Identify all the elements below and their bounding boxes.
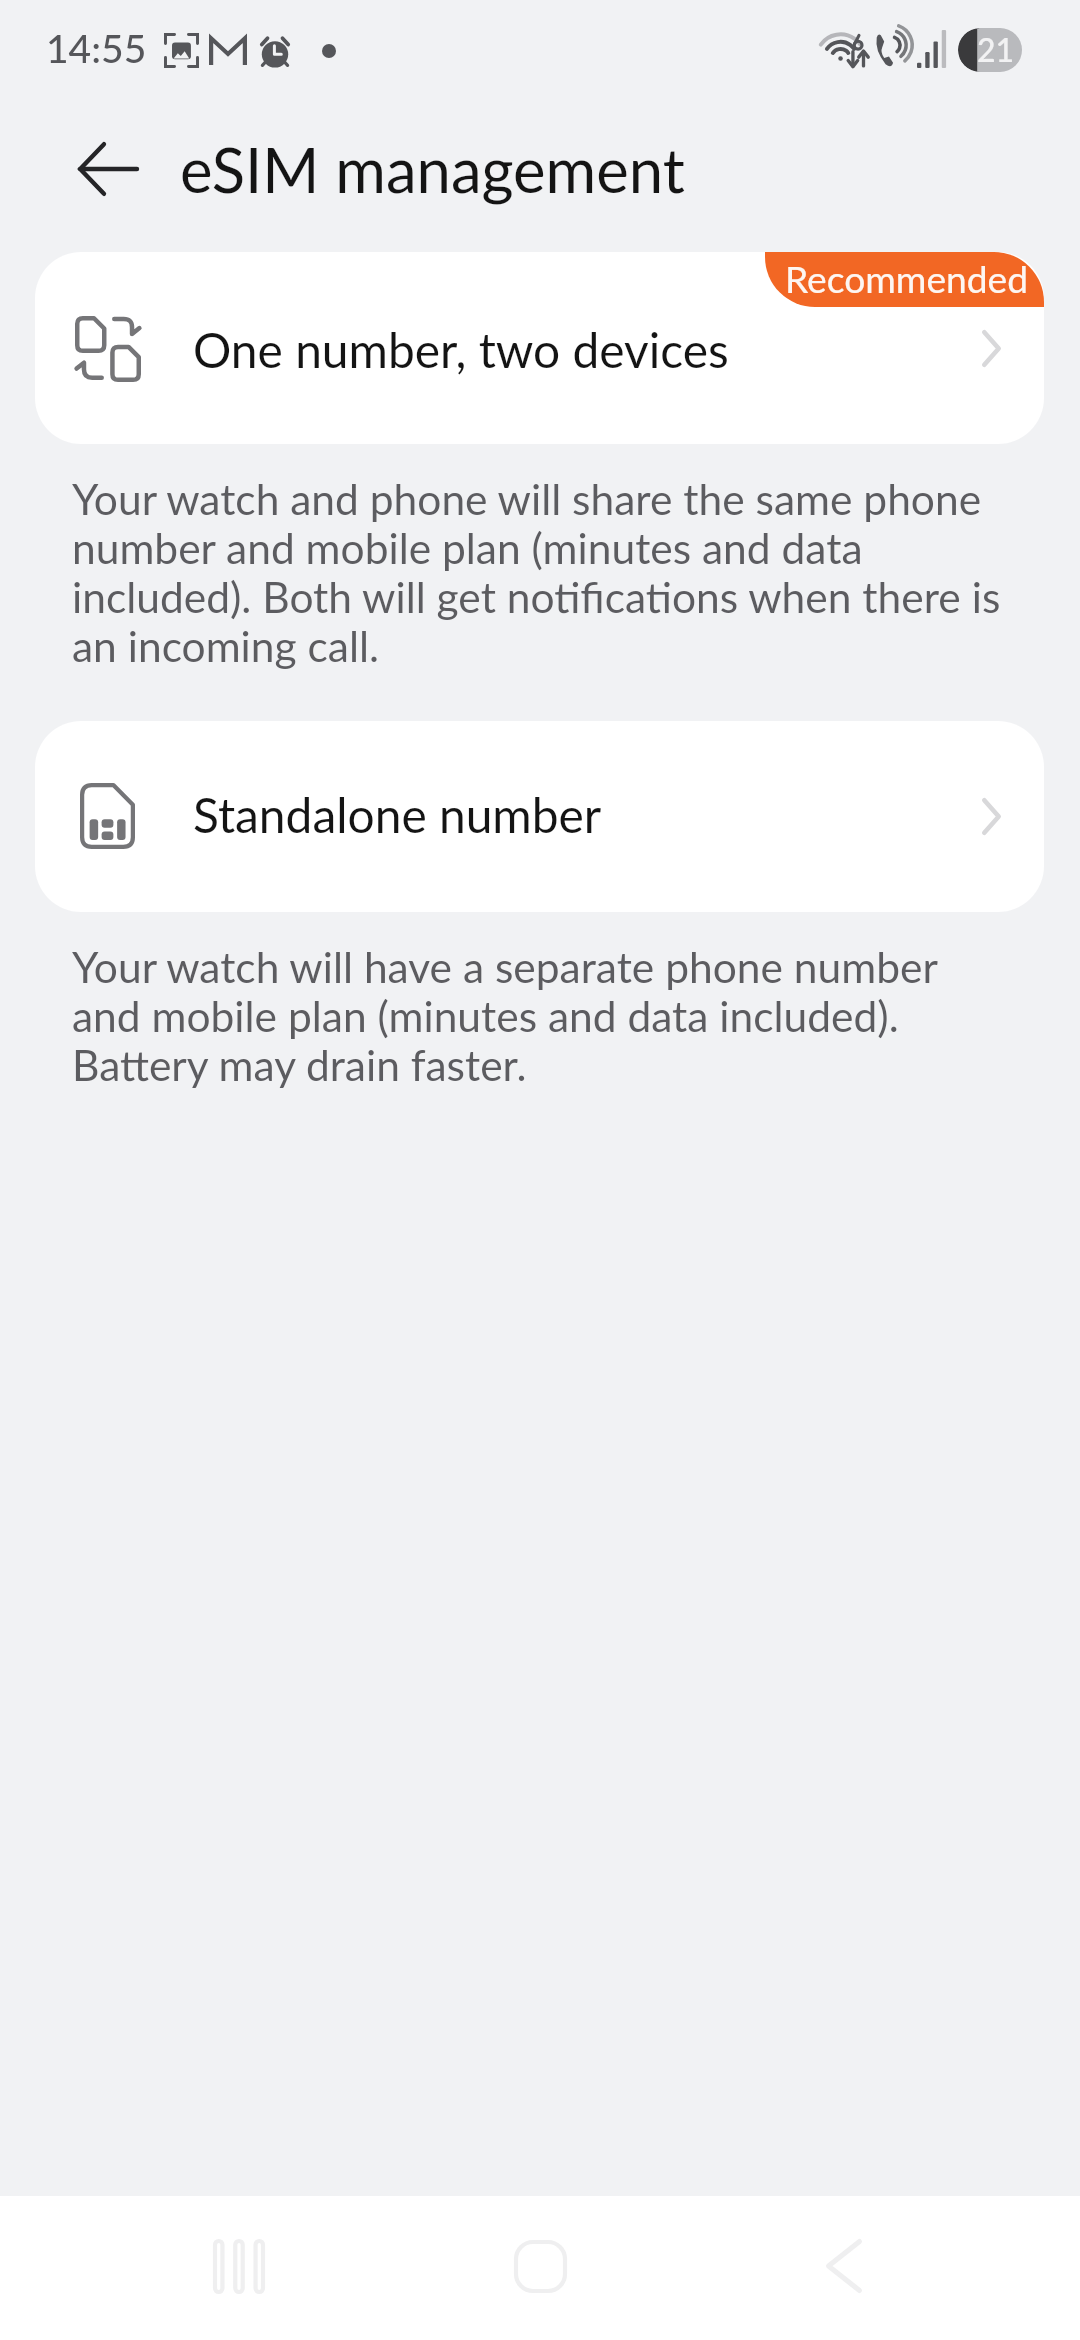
- staticText: One number, two devices: [193, 321, 729, 378]
- button[interactable]: Home: [492, 2218, 588, 2314]
- staticText: Recommended: [785, 256, 1029, 301]
- button[interactable]: Back: [796, 2218, 892, 2314]
- staticText: Your watch and phone will share the same…: [72, 475, 1006, 671]
- staticText: eSIM management: [180, 132, 685, 206]
- staticText: 14:55: [46, 25, 147, 72]
- staticText: Your watch will have a separate phone nu…: [72, 943, 1006, 1090]
- button[interactable]: Back: [59, 121, 155, 217]
- staticText: Standalone number: [193, 786, 602, 843]
- button[interactable]: Standalone number: [35, 721, 1044, 912]
- staticText: 21: [977, 30, 1015, 68]
- button[interactable]: Recent apps: [191, 2218, 287, 2314]
- button[interactable]: One number, two devices: [35, 252, 1044, 444]
